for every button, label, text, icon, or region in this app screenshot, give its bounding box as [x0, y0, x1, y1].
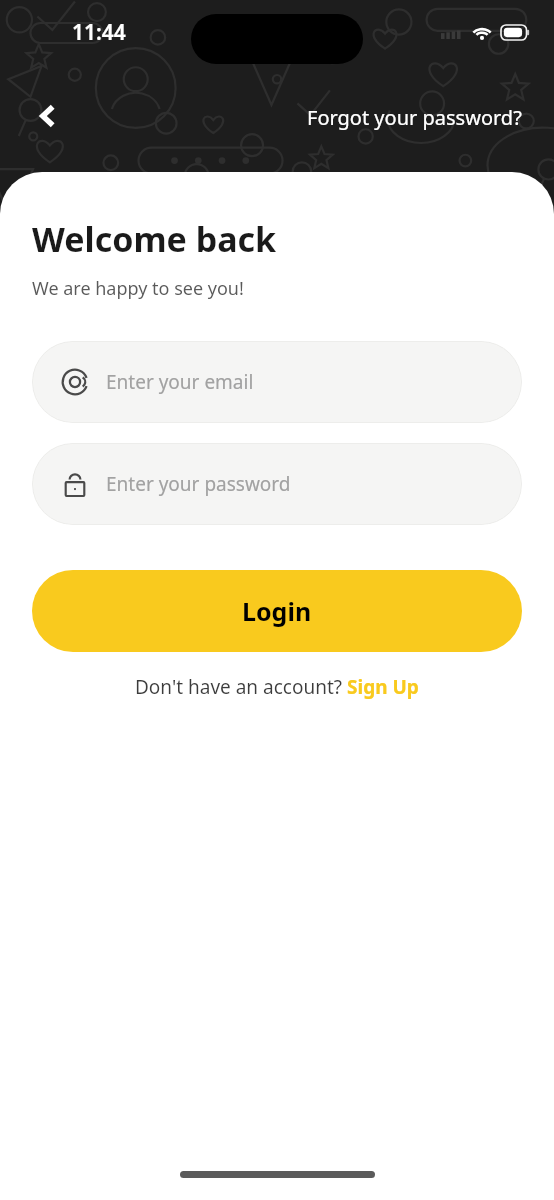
button[interactable]: Forgot your password? [275, 100, 554, 135]
button[interactable]: Enter your email [32, 341, 522, 423]
button[interactable]: Sign Up [347, 674, 419, 700]
staticText: We are happy to see you! [32, 276, 244, 301]
staticText: Sign Up [347, 674, 419, 700]
button[interactable]: Back [22, 90, 74, 142]
staticText: Enter your email [106, 369, 254, 395]
staticText: Welcome back [32, 216, 277, 262]
button[interactable]: Login [32, 570, 522, 652]
staticText: 11:44 [72, 18, 126, 47]
staticText: Don't have an account? [135, 674, 347, 700]
staticText: Login [242, 594, 312, 628]
staticText: Enter your password [106, 471, 291, 497]
button[interactable]: Enter your password [32, 443, 522, 525]
